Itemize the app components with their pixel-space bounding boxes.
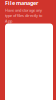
staticText: Have and storage any type of files direc… bbox=[5, 8, 42, 23]
staticText: File manager bbox=[5, 0, 38, 7]
